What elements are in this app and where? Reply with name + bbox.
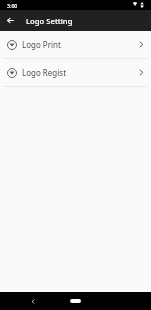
staticText: Logo Setting [26,16,73,26]
staticText: Logo Print [22,39,61,50]
staticText: Logo Regist [22,67,67,78]
button[interactable]: Back [0,10,21,31]
button[interactable]: Home [70,299,81,303]
button[interactable]: Logo Print [0,31,151,58]
button[interactable]: Logo Regist [0,59,151,86]
staticText: 3:00 [7,2,18,9]
button[interactable]: Back [26,295,39,308]
